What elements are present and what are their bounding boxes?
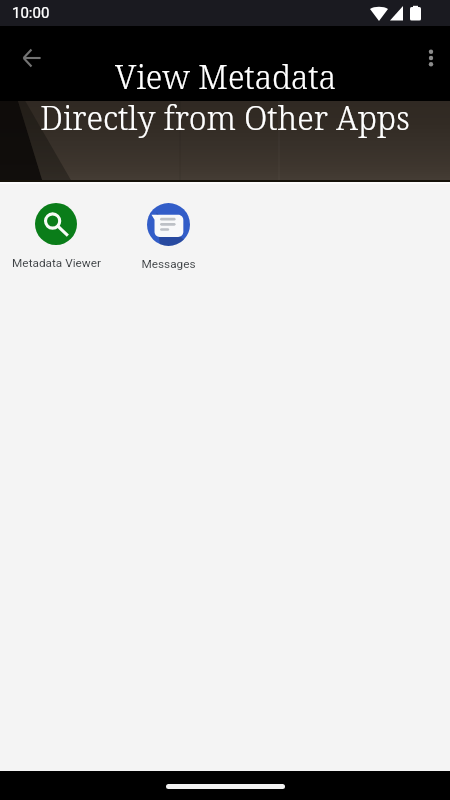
button[interactable]: Metadata Viewer xyxy=(0,195,112,278)
staticText: Messages xyxy=(141,257,196,271)
staticText: Directly from Other Apps xyxy=(40,96,410,140)
staticText: 10:00 xyxy=(12,4,50,22)
staticText: View Metadata xyxy=(115,55,336,99)
staticText: Metadata Viewer xyxy=(12,256,101,270)
button[interactable]: Back xyxy=(8,34,56,82)
button[interactable]: Messages xyxy=(112,195,224,279)
button[interactable]: Home xyxy=(166,784,285,789)
button[interactable]: More options xyxy=(407,34,450,82)
